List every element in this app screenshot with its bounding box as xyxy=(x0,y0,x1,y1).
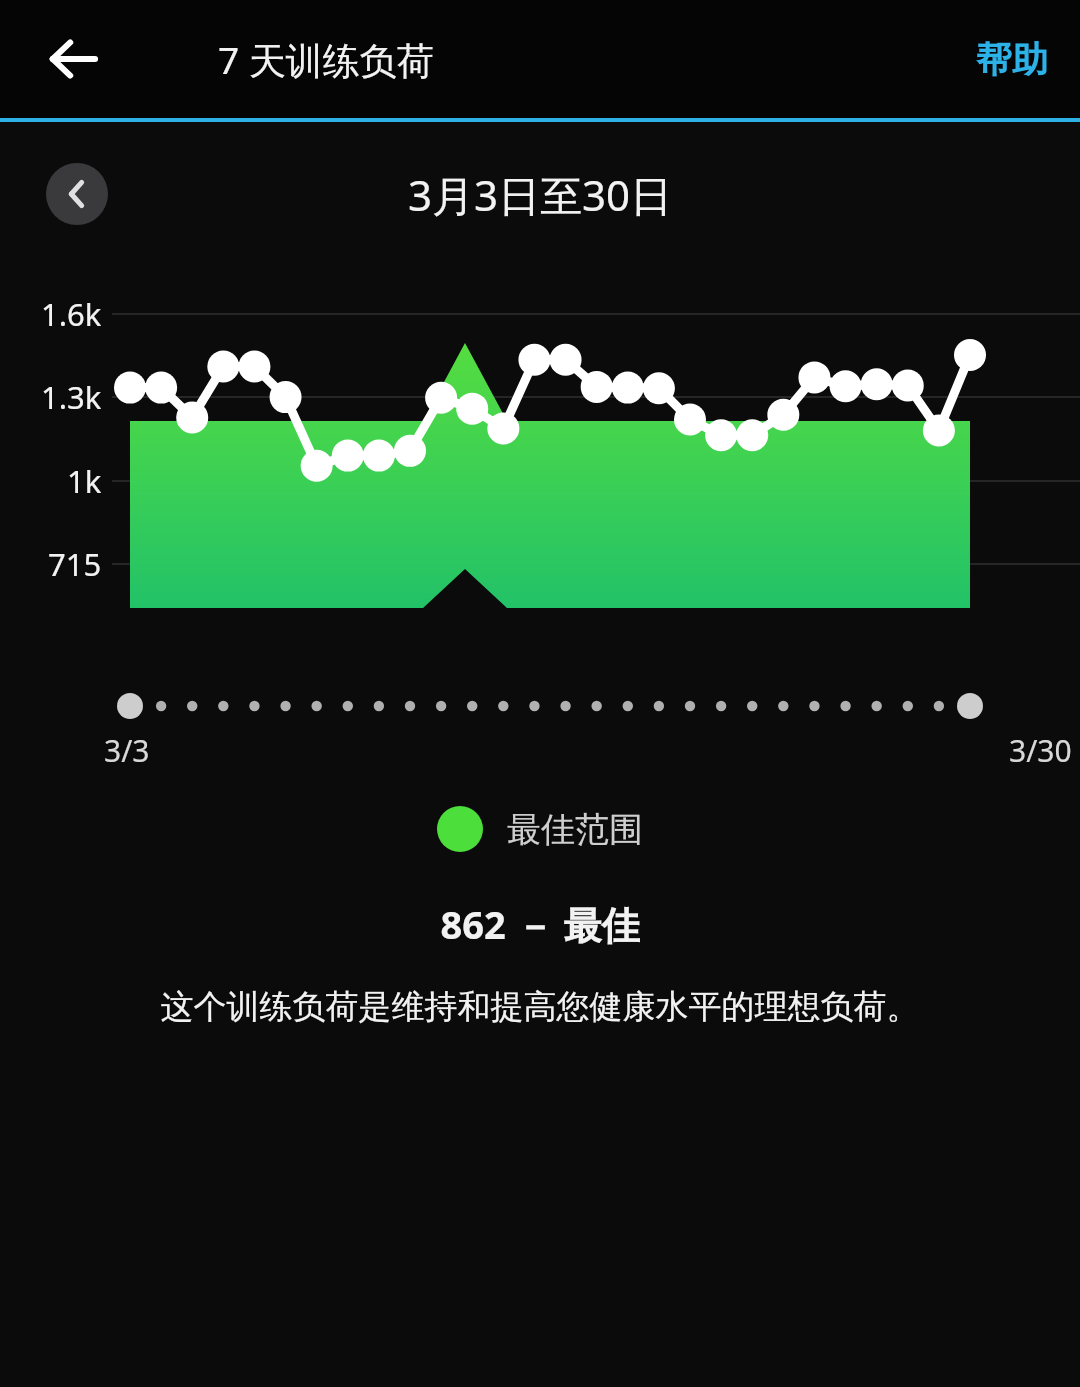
staticText: 这个训练负荷是维持和提高您健康水平的理想负荷。 xyxy=(22,986,1058,1028)
staticText: 3/30 xyxy=(1009,730,1072,771)
staticText: 7 天训练负荷 xyxy=(218,34,434,85)
staticText: 1.3k xyxy=(41,376,102,418)
staticText: 3/3 xyxy=(104,730,150,771)
staticText: 3月3日至30日 xyxy=(408,166,673,223)
button[interactable]: 帮助 xyxy=(962,27,1062,92)
staticText: 862 － 最佳 xyxy=(0,898,1080,950)
staticText: 1k xyxy=(67,460,102,502)
button[interactable]: Back xyxy=(34,20,112,98)
button[interactable]: Previous period xyxy=(46,163,108,225)
staticText: 最佳范围 xyxy=(507,808,643,851)
staticText: 帮助 xyxy=(976,37,1048,82)
staticText: 715 xyxy=(48,543,102,585)
staticText: 1.6k xyxy=(41,293,102,335)
